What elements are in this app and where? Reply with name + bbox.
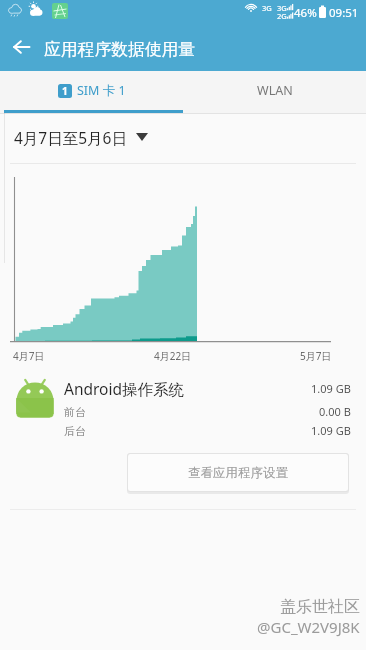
staticText: 1 [62, 84, 68, 98]
button[interactable]: 4月7日至5月6日 [0, 114, 366, 160]
staticText: 盖乐世社区 [280, 597, 360, 617]
staticText: 09:51 [329, 5, 359, 21]
staticText: Android操作系统 [64, 378, 311, 399]
staticText: SIM 卡 1 [77, 82, 126, 99]
staticText: 4月7日至5月6日 [14, 127, 127, 148]
button[interactable]: WLAN [183, 71, 366, 110]
staticText: 后台 [64, 424, 311, 438]
staticText: 46% [294, 5, 317, 21]
staticText: WLAN [257, 82, 293, 99]
button[interactable]: Back [0, 23, 43, 70]
staticText: 1.09 GB [311, 381, 351, 396]
staticText: 2G [277, 11, 287, 21]
button[interactable]: Android操作系统 [0, 366, 366, 438]
staticText: @GC_W2V9J8K [257, 617, 360, 637]
staticText: 应用程序数据使用量 [44, 39, 196, 60]
staticText: 4月7日 [13, 349, 45, 363]
staticText: 3G [277, 3, 287, 13]
staticText: 3G [262, 3, 272, 13]
button[interactable]: 查看应用程序设置 [128, 454, 348, 491]
staticText: 5月7日 [300, 349, 332, 363]
staticText: 1.09 GB [311, 423, 351, 438]
staticText: 4月22日 [154, 349, 192, 363]
button[interactable]: 1 [0, 71, 183, 110]
staticText: 查看应用程序设置 [188, 465, 288, 481]
staticText: 0.00 B [319, 404, 351, 419]
staticText: 前台 [64, 405, 319, 419]
